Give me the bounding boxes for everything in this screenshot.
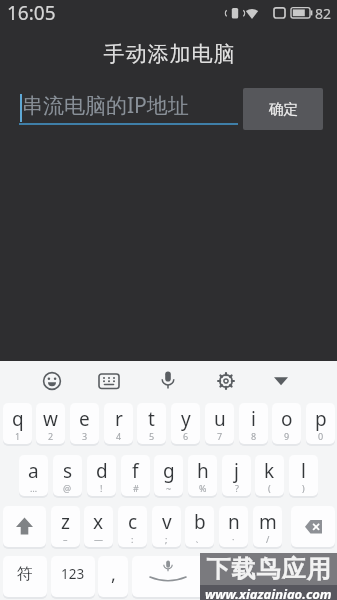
button[interactable]: i (239, 403, 268, 444)
staticText: — (94, 533, 104, 545)
staticText: 1 (15, 430, 21, 442)
staticText: b (194, 509, 206, 535)
staticText: 16:05 (7, 0, 56, 26)
button[interactable]: m (253, 506, 282, 547)
button[interactable]: f (121, 455, 150, 496)
button[interactable]: o (272, 403, 301, 444)
button[interactable]: n (219, 506, 248, 547)
button[interactable] (273, 376, 289, 386)
staticText: 串流电脑的IP地址 (22, 91, 189, 120)
staticText: h (197, 458, 209, 484)
staticText: z (61, 509, 70, 535)
staticText: o (281, 406, 293, 432)
staticText: g (163, 458, 175, 484)
button[interactable]: v (152, 506, 181, 547)
button[interactable]: p (306, 403, 335, 444)
staticText: 下载鸟应用 (206, 554, 331, 584)
button[interactable] (42, 371, 62, 391)
button[interactable]: 123 (51, 556, 95, 597)
staticText: c (128, 509, 138, 535)
staticText: ; (165, 533, 168, 545)
button[interactable]: 确定 (243, 88, 323, 130)
staticText: % (199, 482, 207, 494)
button[interactable]: k (255, 455, 284, 496)
staticText: s (63, 458, 73, 484)
button[interactable]: h (188, 455, 217, 496)
staticText: 手动添加电脑 (103, 41, 235, 67)
staticText: … (30, 482, 38, 494)
staticText: 82 (315, 4, 332, 23)
staticText: q (12, 406, 24, 432)
staticText: k (264, 458, 275, 484)
button[interactable] (159, 370, 177, 391)
staticText: ? (235, 482, 239, 494)
staticText: 7 (217, 430, 223, 442)
staticText: 123 (61, 565, 85, 583)
staticText: a (28, 458, 39, 484)
staticText: n (228, 509, 240, 535)
staticText: w (43, 406, 58, 432)
button[interactable]: e (70, 403, 99, 444)
staticText: # (133, 482, 139, 494)
button[interactable]: j (222, 455, 251, 496)
staticText: 4 (116, 430, 122, 442)
button[interactable] (291, 506, 335, 547)
staticText: / (266, 533, 270, 545)
button[interactable]: x (84, 506, 113, 547)
staticText: x (93, 509, 104, 535)
staticText: t (148, 406, 155, 432)
button[interactable] (98, 373, 120, 390)
staticText: 0 (318, 430, 324, 442)
staticText: u (214, 406, 226, 432)
button[interactable]: u (205, 403, 234, 444)
button[interactable] (132, 556, 240, 597)
button[interactable]: l (289, 455, 318, 496)
button[interactable] (216, 371, 236, 391)
staticText: @ (63, 482, 72, 494)
staticText: v (162, 509, 172, 535)
staticText: ) (302, 482, 305, 494)
button[interactable]: q (3, 403, 32, 444)
button[interactable]: y (171, 403, 200, 444)
staticText: 6 (183, 430, 189, 442)
button[interactable]: r (104, 403, 133, 444)
button[interactable]: 符 (3, 556, 47, 597)
staticText: ! (100, 482, 103, 494)
staticText: e (79, 406, 90, 432)
staticText: 8 (251, 430, 257, 442)
staticText: j (234, 458, 239, 484)
button[interactable] (19, 86, 238, 125)
staticText: i (251, 406, 256, 432)
staticText: 9 (284, 430, 290, 442)
button[interactable]: t (137, 403, 166, 444)
button[interactable]: s (53, 455, 82, 496)
button[interactable]: w (36, 403, 65, 444)
button[interactable]: c (118, 506, 147, 547)
staticText: www.xiazainiao.com (205, 585, 332, 600)
staticText: , (111, 562, 116, 587)
button[interactable]: a (19, 455, 48, 496)
staticText: f (132, 458, 139, 484)
staticText: 2 (48, 430, 54, 442)
staticText: y (181, 406, 191, 432)
staticText: d (96, 458, 108, 484)
staticText: 5 (149, 430, 155, 442)
button[interactable]: g (154, 455, 183, 496)
button[interactable] (3, 506, 46, 547)
staticText: m (259, 509, 277, 535)
staticText: 3 (82, 430, 88, 442)
button[interactable]: b (185, 506, 214, 547)
button[interactable]: z (51, 506, 80, 547)
staticText: r (115, 406, 123, 432)
staticText: l (301, 458, 306, 484)
staticText: 、 (195, 533, 204, 544)
staticText: 确定 (269, 100, 298, 118)
button[interactable]: , (98, 556, 128, 597)
staticText: p (315, 406, 327, 432)
staticText: 符 (17, 564, 33, 584)
staticText: ~ (166, 482, 172, 494)
staticText: : (131, 533, 134, 545)
button[interactable]: d (87, 455, 116, 496)
staticText: – (63, 533, 68, 545)
staticText: ( (268, 482, 271, 494)
